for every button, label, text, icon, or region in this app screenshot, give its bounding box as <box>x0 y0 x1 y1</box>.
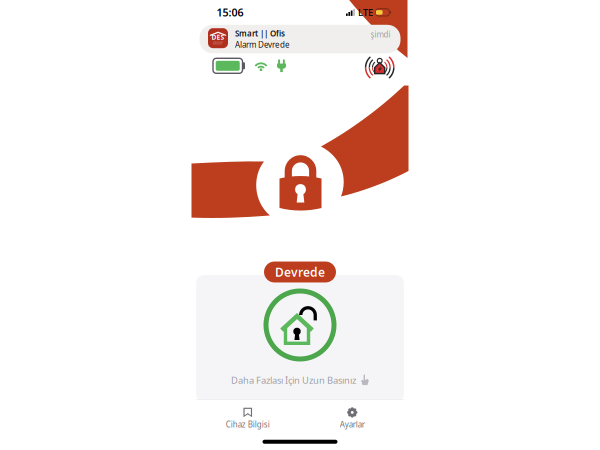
staticText: Ayarlar <box>340 419 365 430</box>
staticText: LTE <box>358 6 373 19</box>
button[interactable]: Daha Fazlası İçin Uzun Basınız <box>196 275 404 402</box>
staticText: şimdi <box>370 29 390 40</box>
staticText: 15:06 <box>216 5 243 19</box>
staticText: Cihaz Bilgisi <box>226 419 270 430</box>
button[interactable]: Cihaz Bilgisi <box>195 406 300 432</box>
button[interactable]: DES <box>195 25 404 53</box>
staticText: DES <box>211 33 224 42</box>
button[interactable]: Devrede <box>264 262 336 281</box>
button[interactable]: Ayarlar <box>300 406 404 432</box>
staticText: Devrede <box>275 264 325 280</box>
staticText: Alarm Devrede <box>235 39 290 50</box>
staticText: Daha Fazlası İçin Uzun Basınız <box>231 374 356 386</box>
staticText: Smart || Ofis <box>235 28 285 39</box>
staticText: GROUP <box>213 42 223 45</box>
